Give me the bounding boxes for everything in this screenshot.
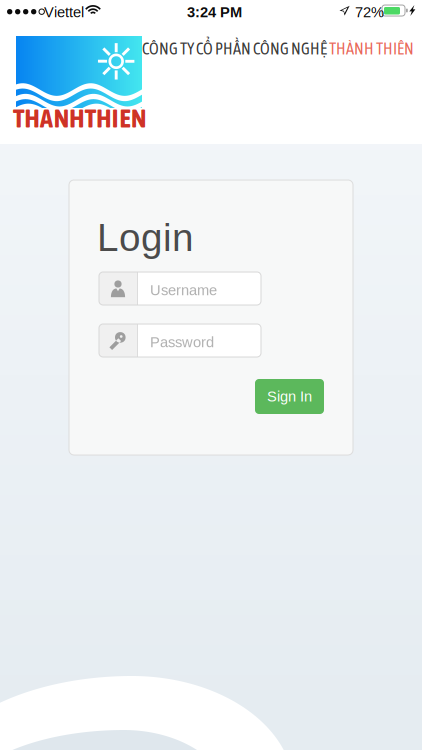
staticText: 72%: [355, 4, 384, 20]
staticText: THÀNH THIÊN: [329, 39, 414, 58]
button[interactable]: Username: [99, 272, 261, 305]
staticText: CÔNG TY CỔ PHẦN CÔNG NGHỆ: [142, 39, 329, 58]
staticText: 3:24 PM: [187, 4, 242, 20]
staticText: Viettel: [44, 4, 84, 20]
staticText: Username: [150, 282, 217, 298]
button[interactable]: Password: [99, 324, 261, 357]
button[interactable]: Sign In: [255, 379, 324, 414]
staticText: Login: [97, 216, 194, 259]
staticText: Sign In: [267, 388, 312, 405]
staticText: THANHTHIEN: [13, 103, 146, 133]
staticText: Password: [150, 334, 214, 350]
